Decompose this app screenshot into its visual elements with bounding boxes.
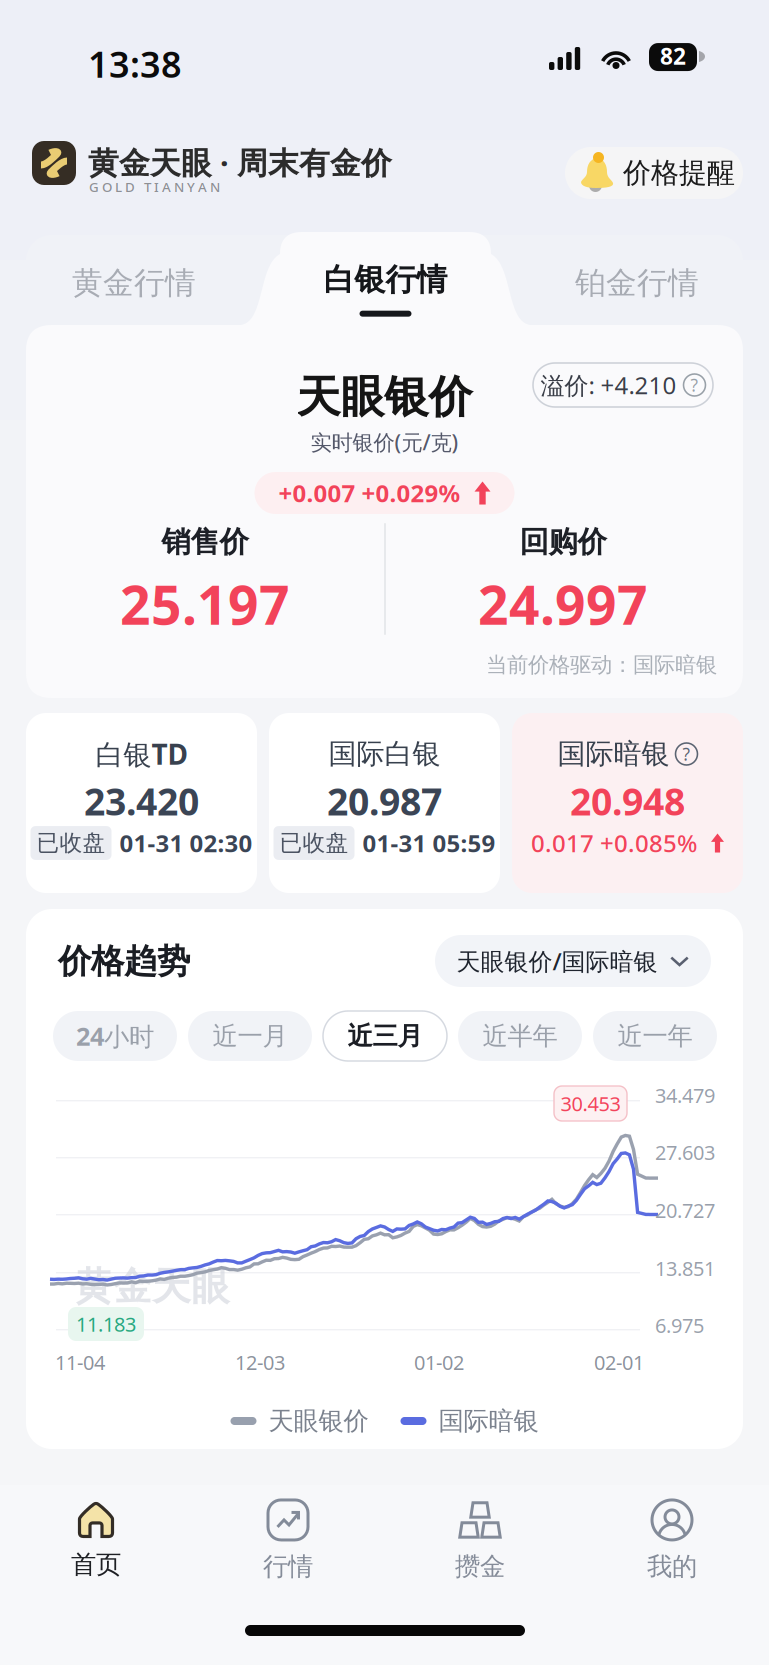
staticText: 13.851: [655, 1255, 715, 1282]
button[interactable]: 攒金: [384, 1485, 576, 1595]
staticText: 行情: [263, 1551, 313, 1582]
staticText: 销售价: [161, 524, 248, 560]
staticText: 回购价: [519, 524, 606, 560]
staticText: 已收盘: [36, 829, 105, 857]
staticText: 11.183: [76, 1311, 136, 1337]
staticText: 34.479: [655, 1082, 715, 1109]
staticText: 近一月: [212, 1020, 287, 1051]
button[interactable]: 首页: [0, 1485, 192, 1595]
button[interactable]: 价格提醒: [565, 147, 743, 199]
button[interactable]: 天眼银价/国际暗银: [435, 935, 711, 987]
staticText: ?: [682, 742, 690, 765]
staticText: 价格趋势: [58, 941, 190, 982]
staticText: 24小时: [76, 1019, 154, 1053]
staticText: 近一年: [617, 1020, 692, 1051]
staticText: 黄金行情: [72, 264, 196, 302]
staticText: 01-02: [414, 1349, 464, 1376]
staticText: 0.017 +0.085%: [531, 827, 697, 859]
staticText: +0.007 +0.029%: [278, 477, 460, 509]
staticText: 30.453: [560, 1090, 620, 1117]
staticText: 23.420: [84, 776, 199, 826]
button[interactable]: 我的: [576, 1485, 768, 1595]
staticText: 天眼银价: [268, 1405, 368, 1436]
button[interactable]: 24小时: [53, 1011, 177, 1061]
button[interactable]: 黄金行情: [27, 236, 241, 330]
button[interactable]: 国际白银: [269, 713, 500, 893]
staticText: 近三月: [347, 1020, 422, 1051]
staticText: 天眼银价/国际暗银: [456, 945, 657, 977]
staticText: 近半年: [482, 1020, 557, 1051]
staticText: 实时银价(元/克): [310, 428, 458, 456]
staticText: 20.727: [655, 1197, 715, 1224]
staticText: 我的: [647, 1551, 697, 1582]
staticText: 国际暗银: [438, 1405, 538, 1436]
staticText: 铂金行情: [575, 264, 699, 302]
button[interactable]: 白银TD: [26, 713, 257, 893]
button[interactable]: 国际暗银: [512, 713, 743, 893]
staticText: 攒金: [455, 1551, 505, 1582]
staticText: 白银行情: [323, 261, 447, 299]
staticText: 当前价格驱动：国际暗银: [486, 652, 717, 678]
staticText: G O L D T I A N Y A N: [89, 178, 220, 196]
button[interactable]: 近三月: [323, 1011, 447, 1061]
staticText: 黄金天眼 · 周末有金价: [88, 142, 392, 183]
staticText: 已收盘: [279, 829, 348, 857]
staticText: 黄金天眼: [74, 1263, 230, 1310]
button[interactable]: 行情: [192, 1485, 384, 1595]
staticText: 01-31 02:30: [119, 827, 252, 859]
staticText: 首页: [71, 1549, 121, 1580]
button[interactable]: 近一年: [593, 1011, 717, 1061]
staticText: 27.603: [655, 1139, 715, 1166]
staticText: 25.197: [120, 569, 290, 639]
button[interactable]: 近半年: [458, 1011, 582, 1061]
staticText: 82: [660, 41, 686, 71]
staticText: 20.987: [327, 776, 442, 826]
button[interactable]: 近一月: [188, 1011, 312, 1061]
staticText: 天眼银价: [296, 370, 472, 424]
button[interactable]: 白银行情: [241, 232, 530, 330]
staticText: ?: [690, 373, 698, 396]
staticText: 13:38: [88, 40, 182, 88]
staticText: 6.975: [655, 1312, 704, 1339]
staticText: 24.997: [478, 569, 648, 639]
staticText: 12-03: [235, 1349, 285, 1376]
staticText: 20.948: [570, 776, 685, 826]
staticText: 02-01: [594, 1349, 644, 1376]
staticText: 国际白银: [328, 737, 440, 771]
staticText: 价格提醒: [623, 156, 735, 190]
button[interactable]: 溢价: +4.210: [533, 363, 713, 407]
staticText: 01-31 05:59: [362, 827, 495, 859]
staticText: 溢价: +4.210: [540, 369, 676, 401]
staticText: 白银TD: [95, 735, 187, 773]
staticText: 11-04: [55, 1349, 105, 1376]
button[interactable]: 铂金行情: [530, 236, 744, 330]
staticText: 国际暗银: [557, 737, 669, 771]
